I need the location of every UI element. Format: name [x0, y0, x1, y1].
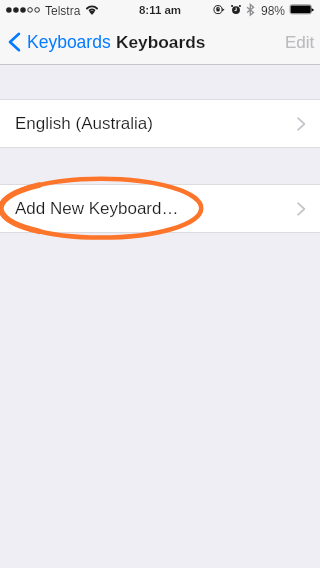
staticText: 8:11 am	[0, 4, 320, 17]
button[interactable]: Add New Keyboard…	[0, 185, 320, 232]
staticText: Add New Keyboard…	[15, 199, 179, 218]
staticText: Keyboards	[116, 32, 206, 51]
staticText: Keyboards	[27, 32, 111, 52]
staticText: 98%	[261, 4, 286, 17]
button[interactable]: English (Australia)	[0, 100, 320, 147]
button[interactable]: Keyboards	[0, 20, 108, 64]
staticText: English (Australia)	[15, 114, 153, 133]
staticText: Telstra	[45, 4, 81, 17]
button[interactable]: Edit	[278, 20, 320, 64]
staticText: Edit	[285, 33, 315, 52]
